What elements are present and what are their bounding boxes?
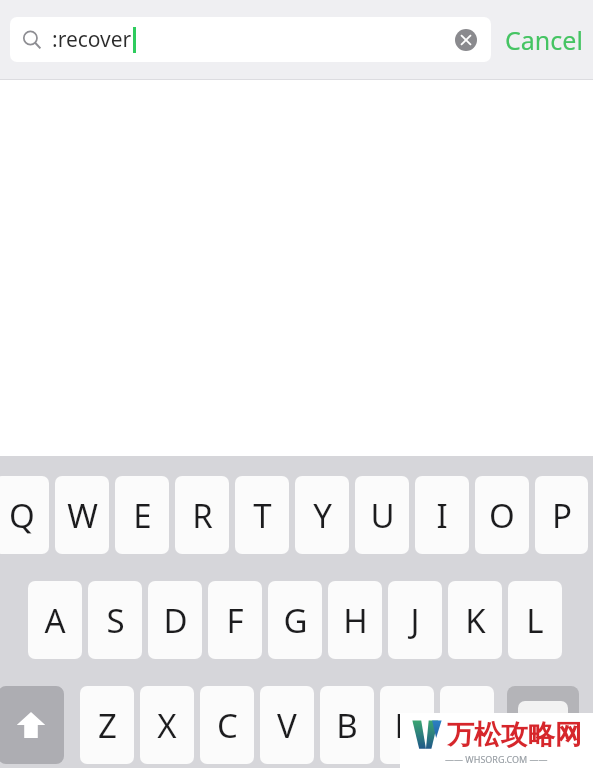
button[interactable]: W bbox=[55, 476, 109, 554]
staticText: J bbox=[410, 598, 420, 643]
button[interactable]: Z bbox=[80, 686, 134, 764]
staticText: Cancel bbox=[505, 23, 583, 57]
staticText: Q bbox=[9, 493, 35, 538]
button[interactable]: U bbox=[355, 476, 409, 554]
staticText: C bbox=[217, 703, 238, 748]
button[interactable]: Clear text bbox=[453, 27, 479, 53]
button[interactable]: :recover bbox=[10, 17, 491, 62]
button[interactable]: O bbox=[475, 476, 529, 554]
staticText: P bbox=[552, 493, 572, 538]
staticText: H bbox=[343, 598, 368, 643]
staticText: Z bbox=[98, 703, 117, 748]
button[interactable]: E bbox=[115, 476, 169, 554]
staticText: E bbox=[133, 493, 152, 538]
staticText: X bbox=[157, 703, 177, 748]
button[interactable]: A bbox=[28, 581, 82, 659]
staticText: F bbox=[226, 598, 244, 643]
button[interactable]: C bbox=[200, 686, 254, 764]
button[interactable]: Q bbox=[0, 476, 49, 554]
staticText: N bbox=[394, 703, 420, 748]
button[interactable]: Y bbox=[295, 476, 349, 554]
button[interactable]: M bbox=[440, 686, 494, 764]
staticText: B bbox=[336, 703, 358, 748]
staticText: Y bbox=[313, 493, 332, 538]
button[interactable]: T bbox=[235, 476, 289, 554]
staticText: S bbox=[106, 598, 125, 643]
button[interactable]: N bbox=[380, 686, 434, 764]
staticText: K bbox=[465, 598, 486, 643]
button[interactable]: X bbox=[140, 686, 194, 764]
button[interactable]: Cancel bbox=[503, 17, 585, 62]
button[interactable]: F bbox=[208, 581, 262, 659]
button[interactable]: B bbox=[320, 686, 374, 764]
button[interactable]: R bbox=[175, 476, 229, 554]
staticText: —— WHSORG.COM —— bbox=[445, 753, 548, 765]
staticText: 万松攻略网 bbox=[447, 718, 582, 752]
button[interactable]: I bbox=[415, 476, 469, 554]
button[interactable]: Delete bbox=[507, 686, 579, 764]
button[interactable]: J bbox=[388, 581, 442, 659]
button[interactable]: H bbox=[328, 581, 382, 659]
button[interactable]: K bbox=[448, 581, 502, 659]
staticText: O bbox=[489, 493, 515, 538]
staticText: W bbox=[67, 493, 98, 538]
button[interactable]: S bbox=[88, 581, 142, 659]
staticText: T bbox=[253, 493, 272, 538]
staticText: :recover bbox=[52, 25, 132, 54]
button[interactable]: G bbox=[268, 581, 322, 659]
staticText: M bbox=[452, 703, 482, 748]
staticText: I bbox=[436, 493, 448, 538]
staticText: D bbox=[163, 598, 188, 643]
button[interactable]: L bbox=[508, 581, 562, 659]
staticText: R bbox=[192, 493, 213, 538]
staticText: A bbox=[44, 598, 66, 643]
staticText: L bbox=[526, 598, 544, 643]
button[interactable]: V bbox=[260, 686, 314, 764]
staticText: V bbox=[277, 703, 297, 748]
staticText: U bbox=[370, 493, 395, 538]
button[interactable]: D bbox=[148, 581, 202, 659]
button[interactable]: Shift bbox=[0, 686, 64, 764]
button[interactable]: P bbox=[535, 476, 588, 554]
staticText: G bbox=[283, 598, 308, 643]
